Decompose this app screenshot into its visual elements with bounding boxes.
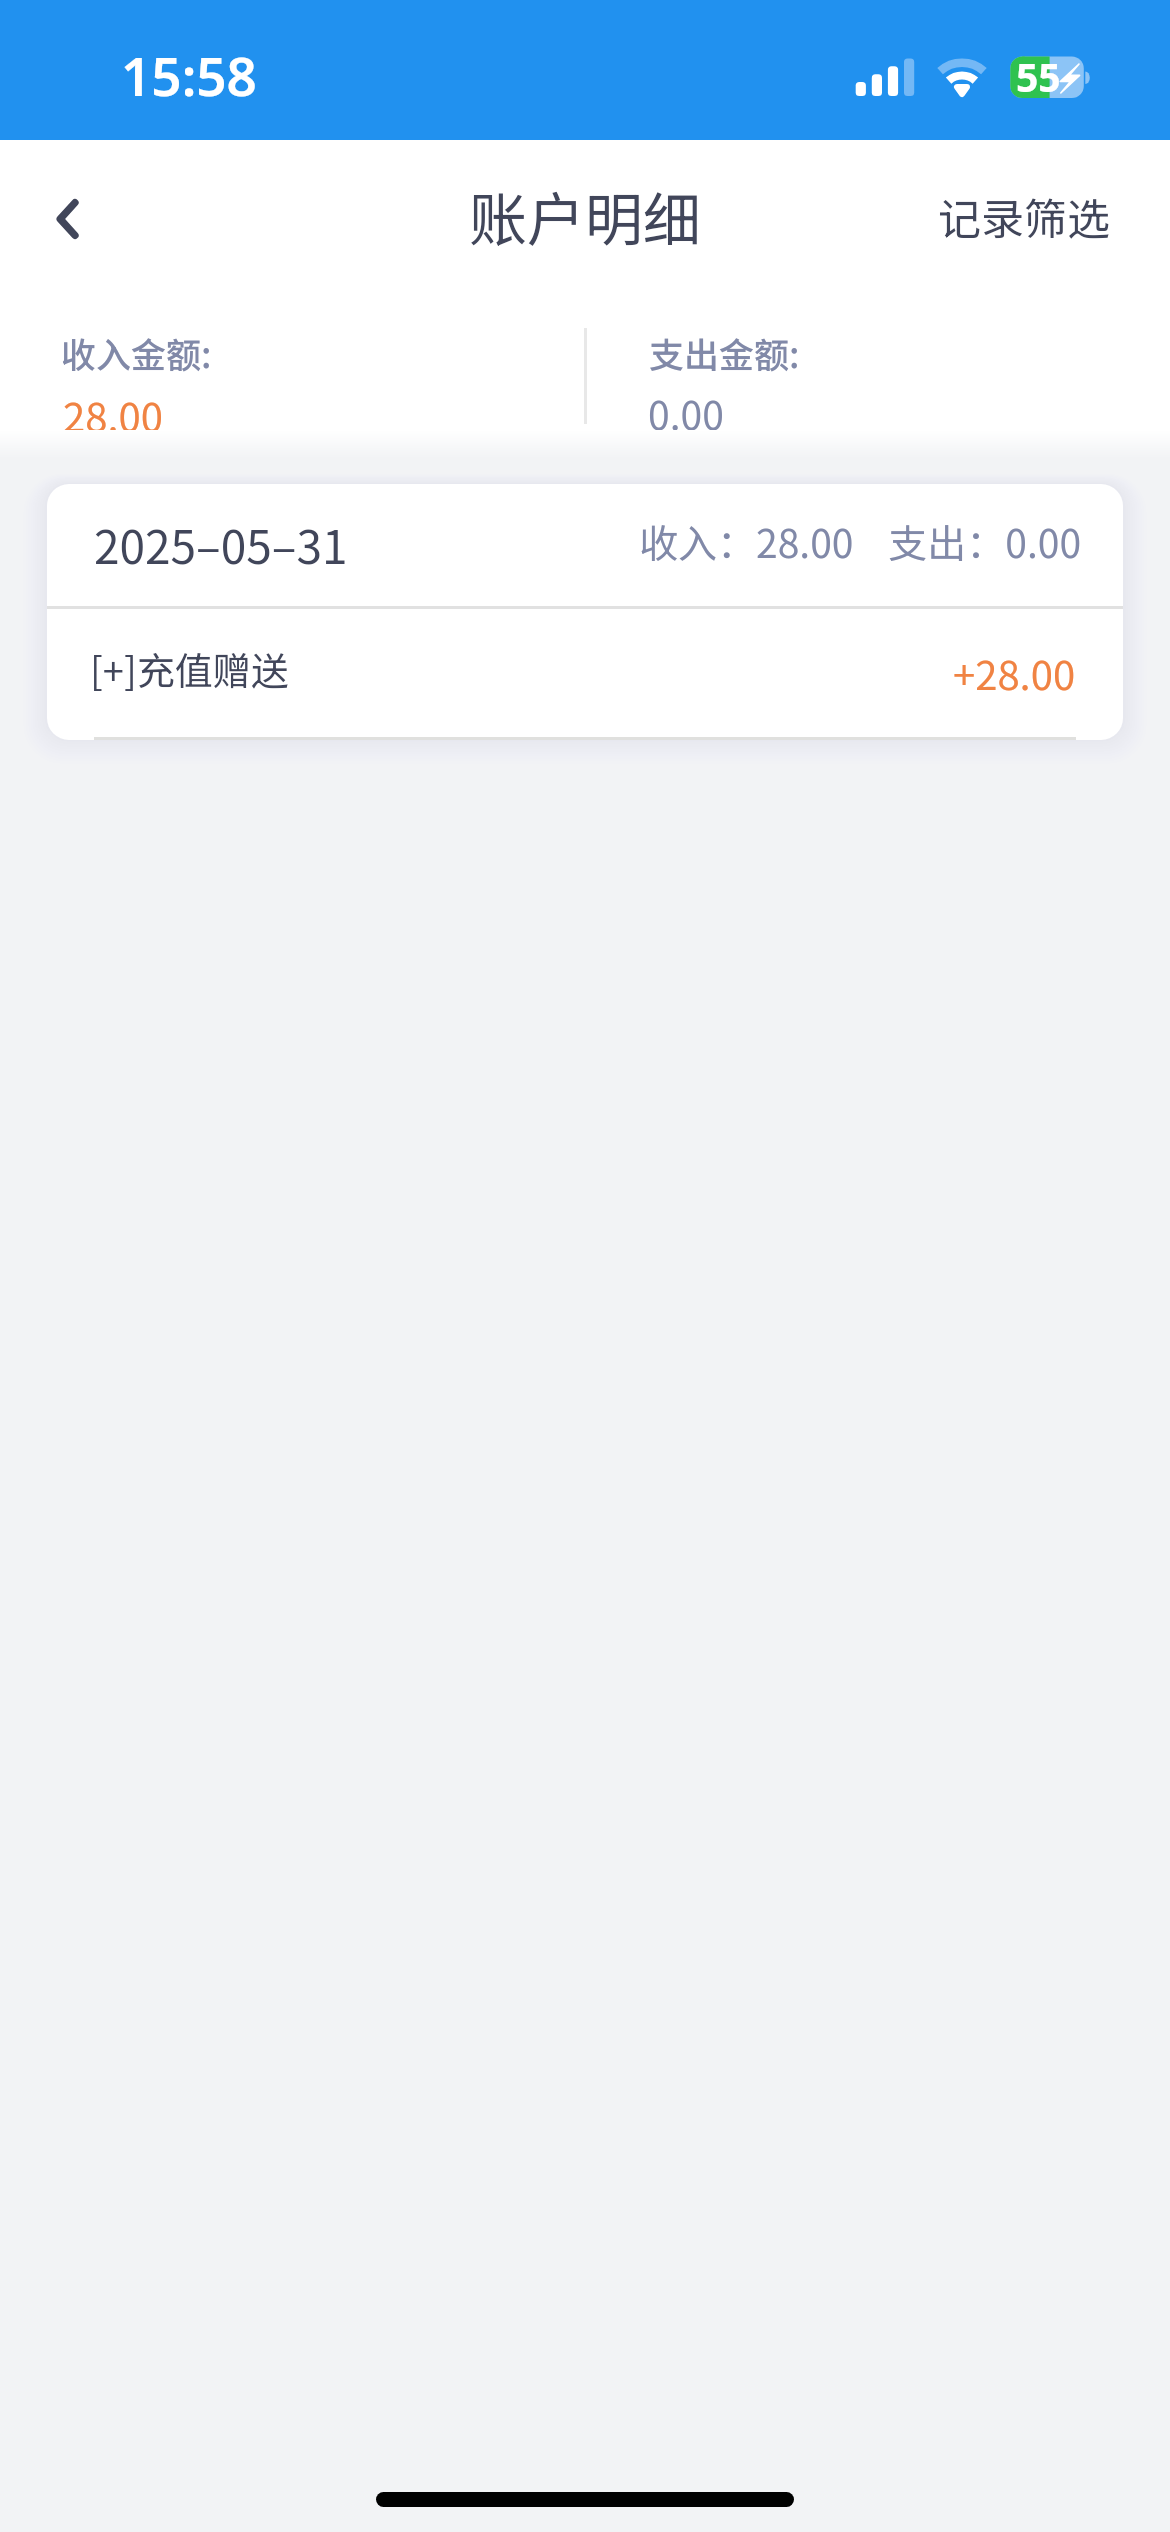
- staticText: 记录筛选: [938, 185, 1110, 247]
- staticText: 收入金额:: [61, 327, 212, 378]
- staticText: 账户明细: [469, 174, 702, 258]
- staticText: +28.00: [953, 644, 1076, 702]
- staticText: 15:58: [121, 39, 257, 111]
- staticText: 支出金额:: [649, 327, 800, 378]
- staticText: 2025–05–31: [94, 511, 348, 578]
- staticText: [+]充值赠送: [90, 641, 289, 696]
- staticText: 55: [1016, 50, 1061, 103]
- button[interactable]: Back: [0, 136, 140, 296]
- staticText: 0.00: [648, 385, 724, 441]
- button[interactable]: [+]充值赠送: [47, 609, 1123, 740]
- staticText: 28.00: [63, 386, 163, 444]
- button[interactable]: 记录筛选: [938, 136, 1110, 296]
- staticText: 收入：28.00 支出：0.00: [639, 513, 1082, 569]
- button[interactable]: 2025–05–31: [47, 484, 1123, 606]
